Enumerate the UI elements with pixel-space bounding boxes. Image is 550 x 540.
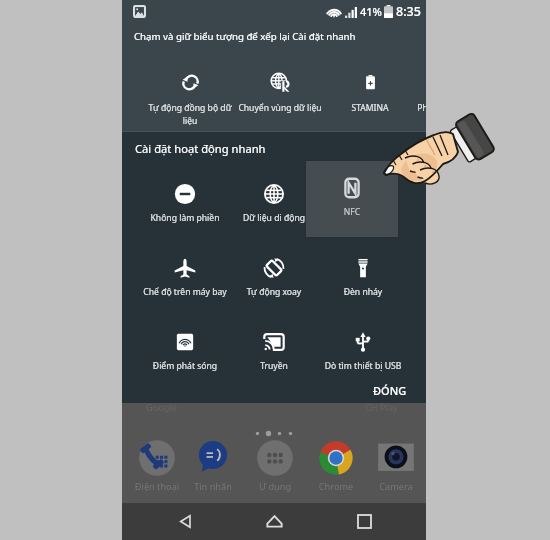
- button[interactable]: ĐÓNG: [362, 377, 416, 404]
- button[interactable]: Ứ dụng: [245, 436, 305, 496]
- button[interactable]: Không làm phiền: [139, 182, 231, 234]
- staticText: Truyền: [228, 360, 320, 372]
- button[interactable]: Điểm phát sóng: [139, 330, 231, 382]
- button[interactable]: Camera: [366, 436, 426, 496]
- staticText: CH Play: [365, 401, 398, 414]
- button[interactable]: Recent apps: [337, 503, 391, 540]
- button[interactable]: Phản chiếu màn hình: [415, 63, 426, 131]
- staticText: Đèn nháy: [317, 286, 409, 298]
- staticText: Camera: [366, 480, 426, 493]
- button[interactable]: Điện thoại: [127, 436, 187, 496]
- staticText: Tự động xoay: [228, 286, 320, 298]
- staticText: Cài đặt hoạt động nhanh: [135, 141, 266, 156]
- button[interactable]: Home: [247, 503, 301, 540]
- button[interactable]: NFC: [306, 176, 398, 228]
- button[interactable]: STAMINA: [325, 63, 415, 131]
- staticText: Chế độ trên máy bay: [139, 286, 231, 298]
- button[interactable]: Tự động đồng bộ dữ liệu: [145, 63, 235, 131]
- staticText: Chạm và giữ biểu tượng để xếp lại Cài đặ…: [134, 30, 356, 43]
- staticText: STAMINA: [325, 102, 415, 114]
- staticText: Không làm phiền: [139, 212, 231, 224]
- button[interactable]: Dữ liệu di động: [228, 182, 320, 234]
- button[interactable]: Truyền: [228, 330, 320, 382]
- staticText: Điểm phát sóng: [139, 360, 231, 372]
- staticText: Dò tìm thiết bị USB: [317, 360, 409, 372]
- button[interactable]: Chrome: [306, 436, 366, 496]
- staticText: Google: [146, 401, 178, 414]
- staticText: Dữ liệu di động: [228, 212, 320, 224]
- button[interactable]: Tin nhắn: [183, 436, 243, 496]
- staticText: Ứ dụng: [245, 480, 305, 493]
- button[interactable]: Đèn nháy: [317, 256, 409, 308]
- staticText: 8:35: [396, 3, 421, 20]
- button[interactable]: Dò tìm thiết bị USB: [317, 330, 409, 382]
- staticText: Chuyển vùng dữ liệu: [235, 102, 325, 114]
- button[interactable]: Chế độ trên máy bay: [139, 256, 231, 308]
- staticText: Phản chiếu màn hình: [415, 102, 426, 114]
- staticText: ĐÓNG: [373, 383, 407, 398]
- button[interactable]: Tự động xoay: [228, 256, 320, 308]
- staticText: Tự động đồng bộ dữ liệu: [145, 102, 235, 126]
- button[interactable]: Chuyển vùng dữ liệu: [235, 63, 325, 131]
- staticText: Tin nhắn: [183, 480, 243, 493]
- button[interactable]: Back: [158, 503, 212, 540]
- staticText: Chrome: [306, 480, 366, 493]
- staticText: Điện thoại: [127, 480, 187, 493]
- staticText: 41%: [360, 4, 382, 19]
- staticText: NFC: [306, 206, 398, 218]
